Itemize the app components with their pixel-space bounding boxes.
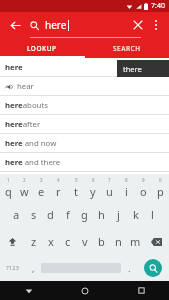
- staticText: 9: [142, 177, 145, 183]
- button[interactable]: j: [110, 201, 127, 228]
- staticText: k: [133, 207, 139, 222]
- staticText: 4: [57, 177, 60, 183]
- staticText: hereafter: [5, 119, 41, 130]
- button[interactable]: a: [8, 201, 25, 228]
- button[interactable]: 8: [118, 174, 135, 201]
- staticText: a: [13, 207, 20, 222]
- button[interactable]: Home: [57, 281, 113, 300]
- staticText: f: [66, 207, 70, 222]
- staticText: here and now: [5, 138, 57, 149]
- staticText: u: [106, 184, 113, 199]
- staticText: q: [5, 184, 12, 199]
- staticText: r: [56, 184, 61, 199]
- staticText: o: [140, 184, 147, 199]
- button[interactable]: here and there: [0, 153, 169, 172]
- button[interactable]: k: [127, 201, 144, 228]
- button[interactable]: d: [42, 201, 59, 228]
- staticText: h: [98, 207, 105, 222]
- staticText: t: [74, 184, 78, 199]
- staticText: SEARCH: [113, 44, 141, 53]
- staticText: 7:40: [151, 1, 165, 11]
- staticText: here and there: [5, 157, 61, 168]
- button[interactable]: h: [93, 201, 110, 228]
- staticText: s: [31, 207, 37, 222]
- button[interactable]: 3: [33, 174, 50, 201]
- staticText: d: [47, 207, 54, 222]
- button[interactable]: SEARCH: [84, 38, 169, 58]
- button[interactable]: LOOKUP: [0, 38, 84, 58]
- button[interactable]: there: [117, 60, 169, 77]
- button[interactable]: More options: [148, 17, 164, 33]
- staticText: y: [90, 184, 96, 199]
- button[interactable]: hereafter: [0, 115, 169, 134]
- staticText: m: [130, 234, 141, 249]
- button[interactable]: Back: [0, 281, 57, 300]
- button[interactable]: z: [25, 228, 42, 255]
- staticText: j: [117, 207, 120, 222]
- staticText: v: [82, 234, 88, 249]
- staticText: e: [38, 184, 45, 199]
- staticText: hereabouts: [5, 100, 48, 111]
- staticText: ?123: [6, 264, 19, 272]
- staticText: p: [157, 184, 164, 199]
- staticText: w: [20, 184, 29, 199]
- staticText: 0: [159, 177, 162, 183]
- button[interactable]: v: [76, 228, 93, 255]
- button[interactable]: f: [59, 201, 76, 228]
- staticText: z: [31, 234, 37, 249]
- button[interactable]: 2: [16, 174, 33, 201]
- button[interactable]: 7: [101, 174, 118, 201]
- button[interactable]: l: [144, 201, 161, 228]
- staticText: 1: [7, 177, 10, 183]
- button[interactable]: Shift: [0, 228, 25, 255]
- staticText: here: [5, 62, 23, 73]
- button[interactable]: 5: [67, 174, 84, 201]
- staticText: .: [128, 262, 131, 274]
- button[interactable]: Backspace: [144, 228, 169, 255]
- staticText: g: [81, 207, 88, 222]
- staticText: ,: [32, 262, 35, 274]
- staticText: hear: [17, 81, 34, 92]
- button[interactable]: hear: [0, 77, 169, 96]
- staticText: i: [125, 184, 128, 199]
- staticText: 6: [92, 177, 95, 183]
- staticText: 3: [40, 177, 43, 183]
- button[interactable]: ?123: [0, 255, 25, 281]
- button[interactable]: 1: [0, 174, 16, 201]
- button[interactable]: g: [76, 201, 93, 228]
- staticText: 8: [125, 177, 128, 183]
- button[interactable]: .: [121, 255, 137, 281]
- button[interactable]: b: [93, 228, 110, 255]
- button[interactable]: Recent apps: [113, 281, 169, 300]
- button[interactable]: 0: [152, 174, 169, 201]
- staticText: b: [98, 234, 105, 249]
- staticText: LOOKUP: [27, 44, 57, 53]
- staticText: x: [48, 234, 54, 249]
- button[interactable]: n: [110, 228, 127, 255]
- staticText: 5: [75, 177, 78, 183]
- staticText: there: [123, 64, 142, 74]
- button[interactable]: c: [59, 228, 76, 255]
- staticText: l: [151, 207, 154, 222]
- staticText: 7: [108, 177, 111, 183]
- button[interactable]: s: [25, 201, 42, 228]
- button[interactable]: 9: [135, 174, 152, 201]
- button[interactable]: hereabouts: [0, 96, 169, 115]
- staticText: 2: [23, 177, 26, 183]
- button[interactable]: here and now: [0, 134, 169, 153]
- button[interactable]: x: [42, 228, 59, 255]
- button[interactable]: Clear: [128, 15, 148, 35]
- button[interactable]: 6: [84, 174, 101, 201]
- staticText: c: [65, 234, 71, 249]
- button[interactable]: 4: [50, 174, 67, 201]
- button[interactable]: ,: [25, 255, 41, 281]
- staticText: n: [115, 234, 122, 249]
- staticText: here: [45, 18, 67, 32]
- button[interactable]: m: [127, 228, 144, 255]
- button[interactable]: Back: [5, 15, 25, 35]
- button[interactable]: Search: [137, 255, 169, 281]
- button[interactable]: here: [0, 58, 169, 77]
